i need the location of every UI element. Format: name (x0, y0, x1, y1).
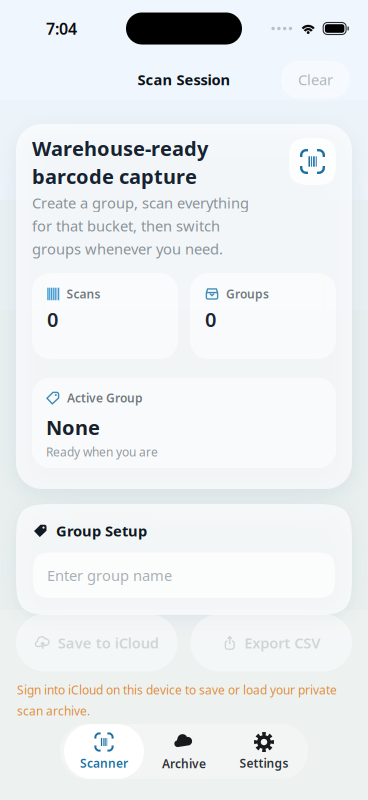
button[interactable]: Settings (224, 724, 304, 779)
staticText: Warehouse-ready (32, 135, 208, 162)
staticText: scan archive. (17, 703, 90, 719)
staticText: None (46, 414, 100, 441)
staticText: for that bucket, then switch (32, 216, 220, 235)
staticText: Group Setup (56, 521, 147, 540)
staticText: Create a group, scan everything (32, 193, 249, 212)
staticText: groups whenever you need. (32, 239, 223, 258)
staticText: Scans (66, 286, 100, 302)
staticText: Scan Session (137, 70, 230, 89)
staticText: Groups (226, 286, 269, 302)
staticText: Archive (162, 755, 206, 771)
staticText: Save to iCloud (58, 633, 159, 652)
staticText: 0 (47, 306, 58, 333)
staticText: Enter group name (47, 565, 172, 585)
staticText: 7:04 (46, 18, 77, 39)
staticText: Settings (239, 755, 288, 771)
staticText: barcode capture (32, 163, 197, 190)
button[interactable]: Export CSV (190, 614, 352, 671)
staticText: Active Group (67, 390, 143, 406)
staticText: Sign into iCloud on this device to save … (17, 682, 337, 698)
button[interactable]: Save to iCloud (16, 614, 177, 671)
staticText: 0 (205, 306, 216, 333)
staticText: Scanner (80, 755, 128, 771)
staticText: Ready when you are (46, 444, 158, 460)
button[interactable]: Archive (144, 723, 224, 779)
button[interactable]: Scanner (64, 724, 144, 779)
staticText: Export CSV (244, 633, 320, 652)
staticText: Clear (298, 70, 333, 89)
button[interactable]: Clear (281, 61, 350, 98)
